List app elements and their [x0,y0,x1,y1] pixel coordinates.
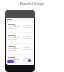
button[interactable] [7,33,34,43]
button[interactable] [7,44,34,54]
button[interactable] [7,55,34,65]
button[interactable]: Add [28,59,31,62]
button[interactable] [7,60,14,63]
button[interactable] [7,22,34,32]
staticText: Beautiful Design [0,2,64,6]
